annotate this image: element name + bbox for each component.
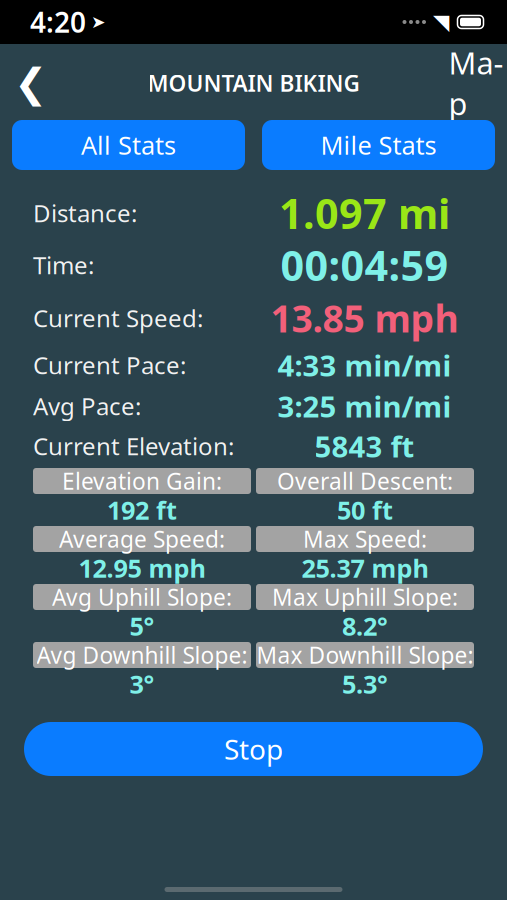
staticText: 50 ft bbox=[337, 493, 393, 527]
staticText: 1.097 mi bbox=[279, 186, 450, 240]
staticText: Avg Uphill Slope: bbox=[52, 582, 232, 612]
staticText: Mile Stats bbox=[320, 128, 436, 162]
staticText: Stop bbox=[224, 730, 283, 768]
staticText: 25.37 mph bbox=[301, 551, 428, 585]
staticText: Current Elevation: bbox=[33, 430, 234, 462]
staticText: Overall Descent: bbox=[277, 466, 453, 496]
staticText: ◥ bbox=[433, 10, 449, 34]
staticText: Current Pace: bbox=[33, 349, 186, 381]
staticText: 5° bbox=[129, 609, 154, 643]
button[interactable]: Mile Stats bbox=[262, 120, 495, 170]
button[interactable]: Stop bbox=[24, 722, 483, 776]
staticText: ❮ bbox=[14, 60, 48, 106]
staticText: 3:25 min/mi bbox=[277, 386, 451, 425]
staticText: 13.85 mph bbox=[270, 293, 458, 343]
button[interactable]: All Stats bbox=[12, 120, 245, 170]
button[interactable]: Map bbox=[445, 56, 507, 110]
staticText: Current Speed: bbox=[33, 302, 203, 334]
staticText: All Stats bbox=[81, 128, 176, 162]
staticText: 00:04:59 bbox=[280, 238, 448, 292]
staticText: 12.95 mph bbox=[78, 551, 205, 585]
staticText: Average Speed: bbox=[59, 524, 225, 554]
staticText: Elevation Gain: bbox=[62, 466, 222, 496]
staticText: Avg Downhill Slope: bbox=[36, 640, 247, 670]
staticText: Max Speed: bbox=[303, 524, 427, 554]
staticText: 8.2° bbox=[342, 609, 388, 643]
staticText: 5843 ft bbox=[314, 426, 414, 465]
staticText: 3° bbox=[129, 667, 154, 701]
staticText: 192 ft bbox=[107, 493, 177, 527]
staticText: ➤ bbox=[91, 12, 106, 32]
staticText: Map bbox=[448, 42, 503, 124]
staticText: 4:20 bbox=[30, 3, 86, 41]
staticText: Avg Pace: bbox=[33, 390, 141, 422]
staticText: Time: bbox=[33, 249, 94, 281]
staticText: Distance: bbox=[33, 197, 137, 229]
staticText: Max Downhill Slope: bbox=[256, 640, 473, 670]
staticText: 4:33 min/mi bbox=[277, 345, 451, 384]
staticText: 5.3° bbox=[342, 667, 388, 701]
button[interactable]: Back bbox=[0, 56, 62, 110]
staticText: Max Uphill Slope: bbox=[272, 582, 458, 612]
staticText: MOUNTAIN BIKING bbox=[147, 68, 359, 98]
